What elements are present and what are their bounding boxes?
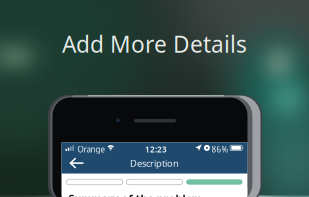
staticText: Description <box>130 157 179 169</box>
staticText: 12:23 <box>145 144 167 155</box>
staticText: Summary of the problem <box>68 191 201 197</box>
staticText: 86% <box>211 144 228 155</box>
staticText: Orange <box>77 144 105 155</box>
button[interactable]: Back <box>65 153 88 173</box>
staticText: Add More Details <box>62 29 247 59</box>
